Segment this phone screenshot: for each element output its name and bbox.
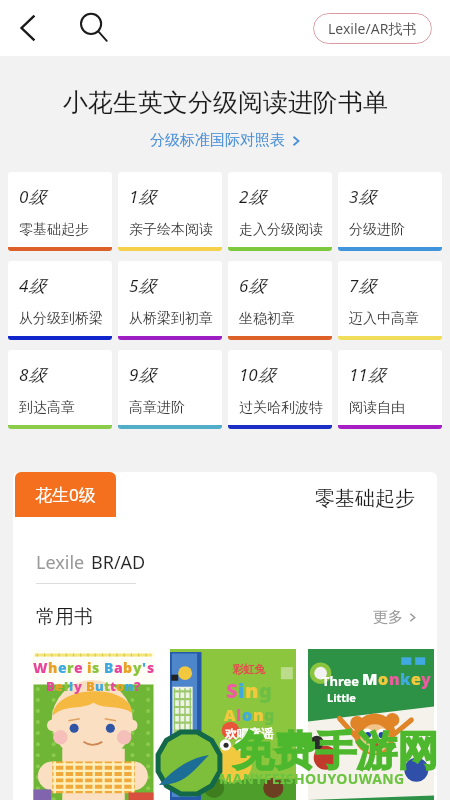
- staticText: B: [86, 677, 95, 695]
- staticText: y: [421, 668, 431, 690]
- staticText: 10级: [239, 363, 275, 386]
- staticText: Little: [327, 690, 356, 705]
- staticText: l: [69, 677, 74, 695]
- staticText: 从分级到桥梁: [19, 310, 103, 328]
- button[interactable]: 9级: [118, 350, 222, 429]
- button[interactable]: 7级: [338, 261, 442, 340]
- staticText: 过关哈利波特: [239, 399, 323, 417]
- staticText: n: [125, 677, 134, 695]
- staticText: 2级: [239, 185, 266, 208]
- staticText: l: [64, 677, 69, 695]
- staticText: 常用书: [36, 605, 93, 629]
- staticText: W: [33, 658, 48, 677]
- staticText: 7级: [349, 274, 376, 297]
- staticText: s: [147, 658, 155, 677]
- button[interactable]: 彩虹兔: [170, 649, 296, 800]
- staticText: 1级: [129, 185, 156, 208]
- staticText: t: [104, 677, 110, 695]
- button[interactable]: Back: [4, 4, 52, 52]
- staticText: n: [253, 704, 264, 726]
- staticText: 花生0级: [35, 483, 96, 506]
- staticText: t: [110, 677, 116, 695]
- staticText: 零基础起步: [315, 486, 415, 511]
- staticText: 亲子绘本阅读: [129, 221, 213, 239]
- staticText: S: [226, 677, 238, 704]
- staticText: B: [46, 677, 55, 695]
- staticText: 6级: [239, 274, 266, 297]
- staticText: 欢唱童谣: [202, 726, 296, 741]
- staticText: 0级: [19, 185, 46, 208]
- staticText: 到达高章: [19, 399, 75, 417]
- button[interactable]: Three: [308, 649, 434, 800]
- staticText: e: [55, 677, 64, 695]
- button[interactable]: W: [31, 649, 156, 800]
- button[interactable]: 5级: [118, 261, 222, 340]
- staticText: 高章进阶: [129, 399, 185, 417]
- staticText: ?: [134, 677, 141, 695]
- button[interactable]: 1级: [118, 172, 222, 251]
- staticText: u: [95, 677, 104, 695]
- staticText: 从桥梁到初章: [129, 310, 213, 328]
- button[interactable]: 3级: [338, 172, 442, 251]
- button[interactable]: 0级: [8, 172, 112, 251]
- button[interactable]: 10级: [228, 350, 332, 429]
- staticText: 分级进阶: [349, 221, 405, 239]
- button[interactable]: 8级: [8, 350, 112, 429]
- staticText: n: [389, 668, 400, 690]
- staticText: r: [67, 658, 74, 677]
- staticText: e: [58, 658, 67, 677]
- button[interactable]: 6级: [228, 261, 332, 340]
- staticText: b: [123, 658, 133, 677]
- staticText: MANYFEISHOUYOUWANG: [219, 769, 405, 788]
- staticText: l: [236, 704, 242, 726]
- staticText: A: [224, 704, 236, 726]
- button[interactable]: Search: [69, 4, 117, 52]
- staticText: y: [74, 677, 82, 695]
- button[interactable]: 2级: [228, 172, 332, 251]
- staticText: 8级: [19, 363, 46, 386]
- staticText: s: [92, 658, 100, 677]
- button[interactable]: 常用书: [13, 605, 437, 629]
- staticText: 小花生英文分级阅读进阶书单: [63, 87, 388, 118]
- staticText: Lexile/AR找书: [328, 19, 417, 38]
- staticText: Lexile: [36, 550, 85, 575]
- button[interactable]: 分级标准国际对照表: [144, 130, 307, 151]
- staticText: o: [242, 704, 253, 726]
- staticText: 免费手游网: [233, 726, 438, 778]
- staticText: y: [133, 658, 142, 677]
- staticText: h: [48, 658, 58, 677]
- staticText: g: [264, 704, 275, 726]
- staticText: o: [378, 668, 389, 690]
- staticText: 5级: [129, 274, 156, 297]
- staticText: 4级: [19, 274, 46, 297]
- staticText: i: [238, 677, 245, 704]
- staticText: 迈入中高章: [349, 310, 419, 328]
- staticText: k: [400, 668, 411, 690]
- button[interactable]: 11级: [338, 350, 442, 429]
- staticText: a: [114, 658, 123, 677]
- staticText: i: [87, 658, 92, 677]
- staticText: 彩虹兔: [202, 662, 296, 676]
- button[interactable]: 4级: [8, 261, 112, 340]
- staticText: o: [116, 677, 125, 695]
- staticText: BR/AD: [91, 550, 146, 575]
- button[interactable]: 花生0级: [15, 472, 116, 517]
- staticText: 9级: [129, 363, 156, 386]
- staticText: 零基础起步: [19, 221, 89, 239]
- button[interactable]: Lexile/AR找书: [313, 13, 432, 44]
- staticText: 更多: [373, 608, 403, 627]
- staticText: [82, 677, 86, 695]
- staticText: B: [104, 658, 114, 677]
- staticText: Three: [322, 672, 360, 690]
- staticText: g: [259, 677, 272, 704]
- staticText: 阅读自由: [349, 399, 405, 417]
- staticText: 走入分级阅读: [239, 221, 323, 239]
- staticText: ': [142, 658, 147, 677]
- staticText: e: [74, 658, 83, 677]
- staticText: 3级: [349, 185, 376, 208]
- staticText: 11级: [349, 363, 385, 386]
- staticText: n: [245, 677, 259, 704]
- staticText: e: [411, 668, 421, 690]
